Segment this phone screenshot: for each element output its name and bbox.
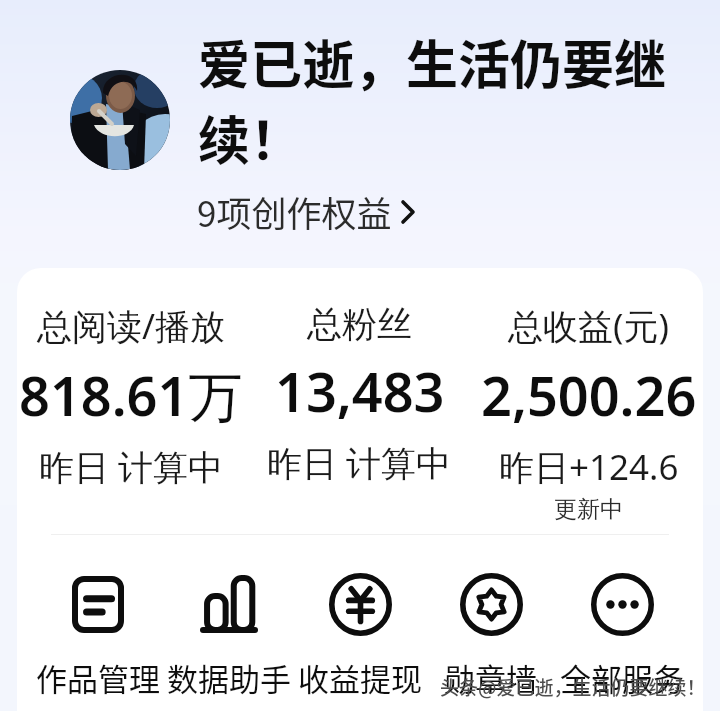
staticText: 总收益(元) (508, 302, 670, 350)
button[interactable]: 全部服务 (556, 572, 687, 700)
staticText: 13,483 (275, 354, 445, 428)
button[interactable]: Profile avatar (70, 70, 170, 170)
button[interactable]: 勋章墙 (425, 572, 556, 700)
button[interactable]: 9项创作权益 (197, 186, 415, 237)
staticText: 爱已逝，生活仍要继续！ (198, 24, 678, 175)
staticText: 818.61万 (19, 358, 243, 432)
staticText: 收益提现 (298, 655, 422, 700)
staticText: 总粉丝 (307, 302, 412, 346)
staticText: 头条@爱已逝，生活仍要继续！ (440, 673, 706, 701)
button[interactable]: 总阅读/播放 (17, 302, 245, 491)
staticText: 9项创作权益 (197, 186, 392, 237)
staticText: 勋章墙 (444, 655, 537, 700)
button[interactable]: 数据助手 (163, 572, 294, 700)
button[interactable]: 作品管理 (33, 572, 163, 700)
staticText: 作品管理 (36, 655, 160, 700)
staticText: 昨日 计算中 (267, 439, 452, 487)
staticText: 全部服务 (560, 655, 684, 700)
staticText: 总阅读/播放 (37, 302, 226, 350)
button[interactable]: 总收益(元) (474, 302, 703, 524)
staticText: 昨日 计算中 (39, 443, 224, 491)
staticText: 更新中 (554, 495, 623, 524)
button[interactable]: 收益提现 (294, 572, 425, 700)
staticText: 数据助手 (167, 655, 291, 700)
staticText: 昨日+124.6 (499, 443, 679, 491)
staticText: 2,500.26 (481, 358, 697, 432)
button[interactable]: 总粉丝 (245, 302, 474, 487)
